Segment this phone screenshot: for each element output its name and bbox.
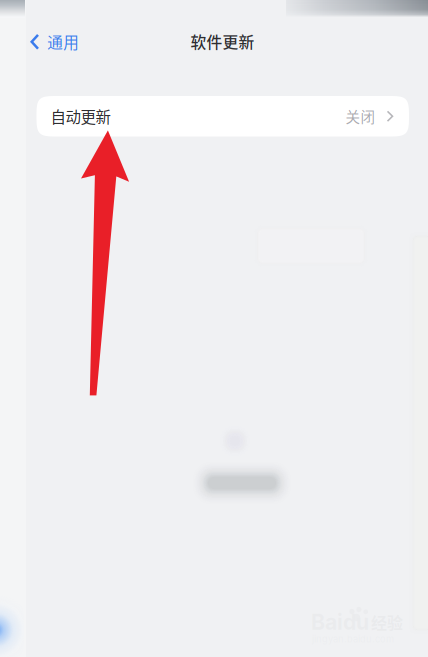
button[interactable]: 通用	[25, 25, 84, 59]
staticText: 通用	[47, 30, 79, 53]
staticText: 软件更新	[190, 30, 254, 53]
staticText: 自动更新	[50, 105, 110, 127]
button[interactable]: 自动更新	[36, 96, 409, 136]
staticText: 关闭	[345, 106, 375, 127]
